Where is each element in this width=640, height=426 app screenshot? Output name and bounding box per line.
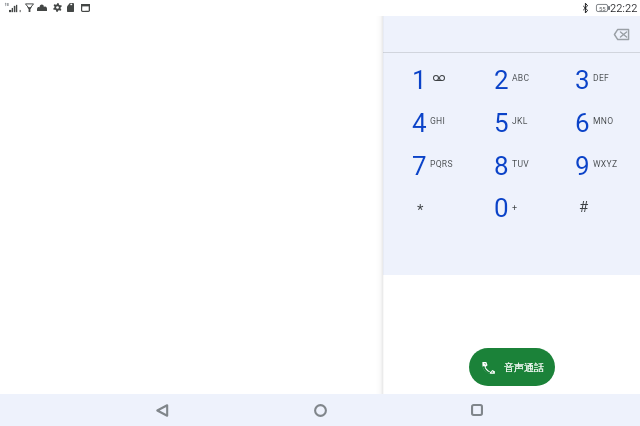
staticText: DEF	[593, 73, 610, 83]
staticText: 2	[494, 65, 509, 93]
staticText: 7	[412, 151, 427, 179]
button[interactable]: 0	[482, 185, 564, 228]
staticText: #	[579, 198, 589, 216]
staticText: 1	[412, 65, 427, 93]
staticText: 55	[599, 5, 606, 12]
button[interactable]: 8	[482, 143, 564, 186]
staticText: 0	[494, 193, 509, 221]
button[interactable]: 4	[400, 100, 482, 143]
staticText: 9	[575, 151, 590, 179]
button[interactable]: Back	[130, 394, 194, 426]
staticText: WXYZ	[593, 159, 618, 169]
button[interactable]: 9	[563, 143, 640, 186]
staticText: JKL	[512, 116, 528, 126]
button[interactable]: *	[400, 185, 482, 228]
staticText: PQRS	[430, 159, 453, 169]
button[interactable]: 音声通話	[469, 348, 555, 386]
staticText: TUV	[512, 159, 529, 169]
button[interactable]: #	[563, 185, 640, 228]
staticText: 8	[494, 151, 509, 179]
staticText: 22:22	[610, 2, 638, 15]
button[interactable]: Recents	[445, 394, 509, 426]
staticText: +	[512, 203, 518, 214]
staticText: 5	[494, 108, 509, 136]
staticText: GHI	[430, 116, 446, 126]
staticText: MNO	[593, 116, 614, 126]
button[interactable]: Home	[288, 394, 352, 426]
button[interactable]: 7	[400, 143, 482, 186]
staticText: 6	[575, 108, 590, 136]
button[interactable]: 3	[563, 57, 640, 100]
button[interactable]: 1	[400, 57, 482, 100]
button[interactable]: Backspace	[607, 23, 635, 45]
button[interactable]: 5	[482, 100, 564, 143]
staticText: ABC	[512, 73, 530, 83]
button[interactable]: 2	[482, 57, 564, 100]
staticText: 音声通話	[504, 361, 544, 374]
staticText: 4	[412, 108, 427, 136]
staticText: *	[417, 201, 424, 219]
staticText: 3	[575, 65, 590, 93]
button[interactable]: 6	[563, 100, 640, 143]
